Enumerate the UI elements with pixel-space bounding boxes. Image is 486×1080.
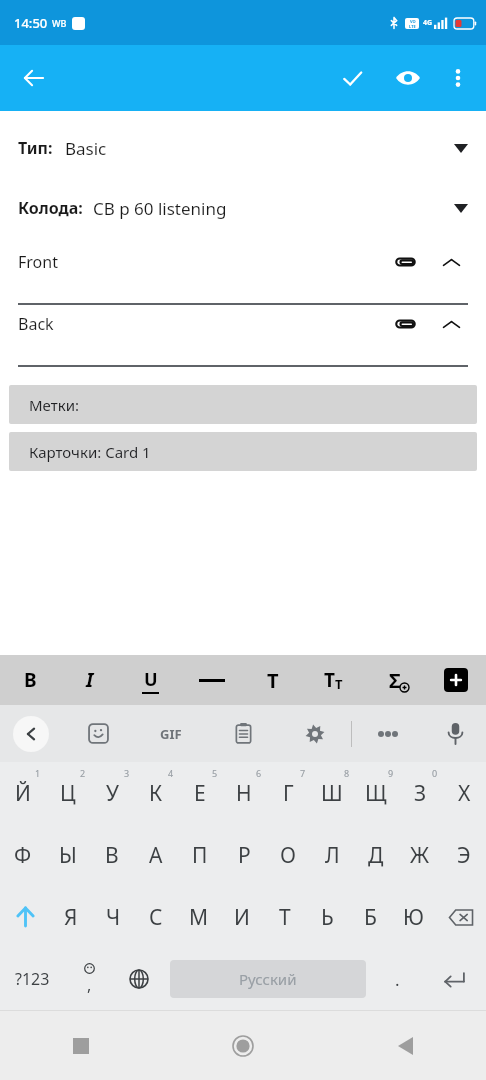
button[interactable]: Ю (392, 886, 435, 948)
staticText: Л (325, 841, 340, 870)
staticText: 8 (344, 767, 350, 779)
button[interactable]: 5 (178, 762, 222, 824)
button[interactable]: Л (310, 824, 354, 886)
staticText: Колода: (18, 197, 83, 219)
button[interactable]: Ч (92, 886, 134, 948)
button[interactable]: В (90, 824, 134, 886)
button[interactable]: Attach to Back (388, 307, 422, 341)
button[interactable]: Format T (242, 655, 303, 705)
button[interactable]: ?123 (0, 948, 64, 1010)
staticText: З (414, 779, 427, 808)
button[interactable]: 1 (0, 762, 45, 824)
button[interactable]: 9 (354, 762, 398, 824)
button[interactable]: Format B (0, 655, 60, 705)
button[interactable]: Тип: (0, 125, 486, 171)
button[interactable]: Э (442, 824, 486, 886)
staticText: Ш (321, 779, 343, 808)
staticText: Ю (403, 903, 424, 932)
button[interactable]: Ж (398, 824, 442, 886)
button[interactable]: Back (10, 54, 58, 102)
button[interactable]: М (177, 886, 220, 948)
button[interactable]: О (266, 824, 310, 886)
button[interactable]: Метки: (9, 385, 477, 424)
staticText: T (267, 667, 279, 694)
button[interactable]: П (178, 824, 222, 886)
staticText: 1 (35, 767, 41, 779)
button[interactable]: 7 (266, 762, 310, 824)
button[interactable]: С (134, 886, 177, 948)
button[interactable]: Format U (120, 655, 181, 705)
button[interactable]: Collapse Front (434, 245, 468, 279)
staticText: 0 (432, 767, 438, 779)
button[interactable]: Stickers (62, 705, 135, 762)
button[interactable]: А (134, 824, 178, 886)
button[interactable]: Voice input (424, 705, 486, 762)
button[interactable]: Format — (181, 655, 242, 705)
staticText: 4G (423, 18, 433, 28)
button[interactable]: Карточки: Card 1 (9, 432, 477, 471)
staticText: Σ (389, 667, 401, 694)
button[interactable]: Recents (0, 1011, 162, 1080)
button[interactable]: 8 (310, 762, 354, 824)
button[interactable]: Backspace (435, 886, 486, 948)
button[interactable]: Д (354, 824, 398, 886)
button[interactable]: 6 (222, 762, 266, 824)
button[interactable]: Collapse Back (434, 307, 468, 341)
staticText: , (87, 974, 92, 996)
staticText: Г (283, 779, 294, 808)
button[interactable]: Русский (170, 960, 366, 998)
button[interactable]: Back (0, 705, 62, 762)
button[interactable]: И (220, 886, 263, 948)
staticText: Тип: (18, 137, 53, 159)
staticText: WB (52, 17, 67, 29)
button[interactable]: Р (222, 824, 266, 886)
button[interactable]: Settings (279, 705, 351, 762)
button[interactable]: Save (328, 54, 376, 102)
button[interactable]: Back (324, 1011, 486, 1080)
button[interactable]: GIF (135, 705, 207, 762)
staticText: И (234, 903, 250, 932)
button[interactable]: Ы (45, 824, 90, 886)
button[interactable]: Х (442, 762, 486, 824)
button[interactable]: 4 (134, 762, 178, 824)
button[interactable]: Я (50, 886, 92, 948)
button[interactable]: Format + (425, 655, 486, 705)
staticText: T (324, 667, 335, 693)
staticText: Ы (59, 841, 77, 870)
staticText: Д (368, 841, 384, 870)
staticText: U (144, 667, 158, 692)
button[interactable]: 2 (45, 762, 90, 824)
staticText: Б (364, 903, 377, 932)
button[interactable]: Ф (0, 824, 45, 886)
staticText: 14:50 (14, 14, 48, 32)
staticText: Э (457, 841, 471, 870)
staticText: Ч (106, 903, 121, 932)
button[interactable]: Shift (0, 886, 50, 948)
button[interactable]: . (372, 948, 422, 1010)
button[interactable]: Format I (60, 655, 120, 705)
button[interactable]: Preview (384, 54, 432, 102)
button[interactable]: Format Σ (364, 655, 425, 705)
button[interactable]: 3 (90, 762, 134, 824)
button[interactable]: Ь (306, 886, 349, 948)
staticText: CB p 60 listening (93, 197, 227, 220)
button[interactable]: Enter (422, 948, 486, 1010)
button[interactable]: Change language (114, 948, 164, 1010)
staticText: Ф (14, 841, 32, 870)
button[interactable]: Home (162, 1011, 324, 1080)
button[interactable]: Attach to Front (388, 245, 422, 279)
staticText: Е (194, 779, 206, 808)
button[interactable]: Б (349, 886, 392, 948)
button[interactable]: Format Tt (303, 655, 364, 705)
staticText: Back (18, 313, 54, 335)
staticText: Я (64, 903, 78, 932)
staticText: Н (236, 779, 252, 808)
button[interactable]: 0 (398, 762, 442, 824)
button[interactable]: Emoji comma (64, 948, 114, 1010)
staticText: Ь (321, 903, 334, 932)
button[interactable]: More options (436, 56, 480, 100)
button[interactable]: Clipboard (207, 705, 279, 762)
button[interactable]: Т (263, 886, 306, 948)
button[interactable]: Колода: (0, 185, 486, 231)
button[interactable]: More (352, 705, 424, 762)
